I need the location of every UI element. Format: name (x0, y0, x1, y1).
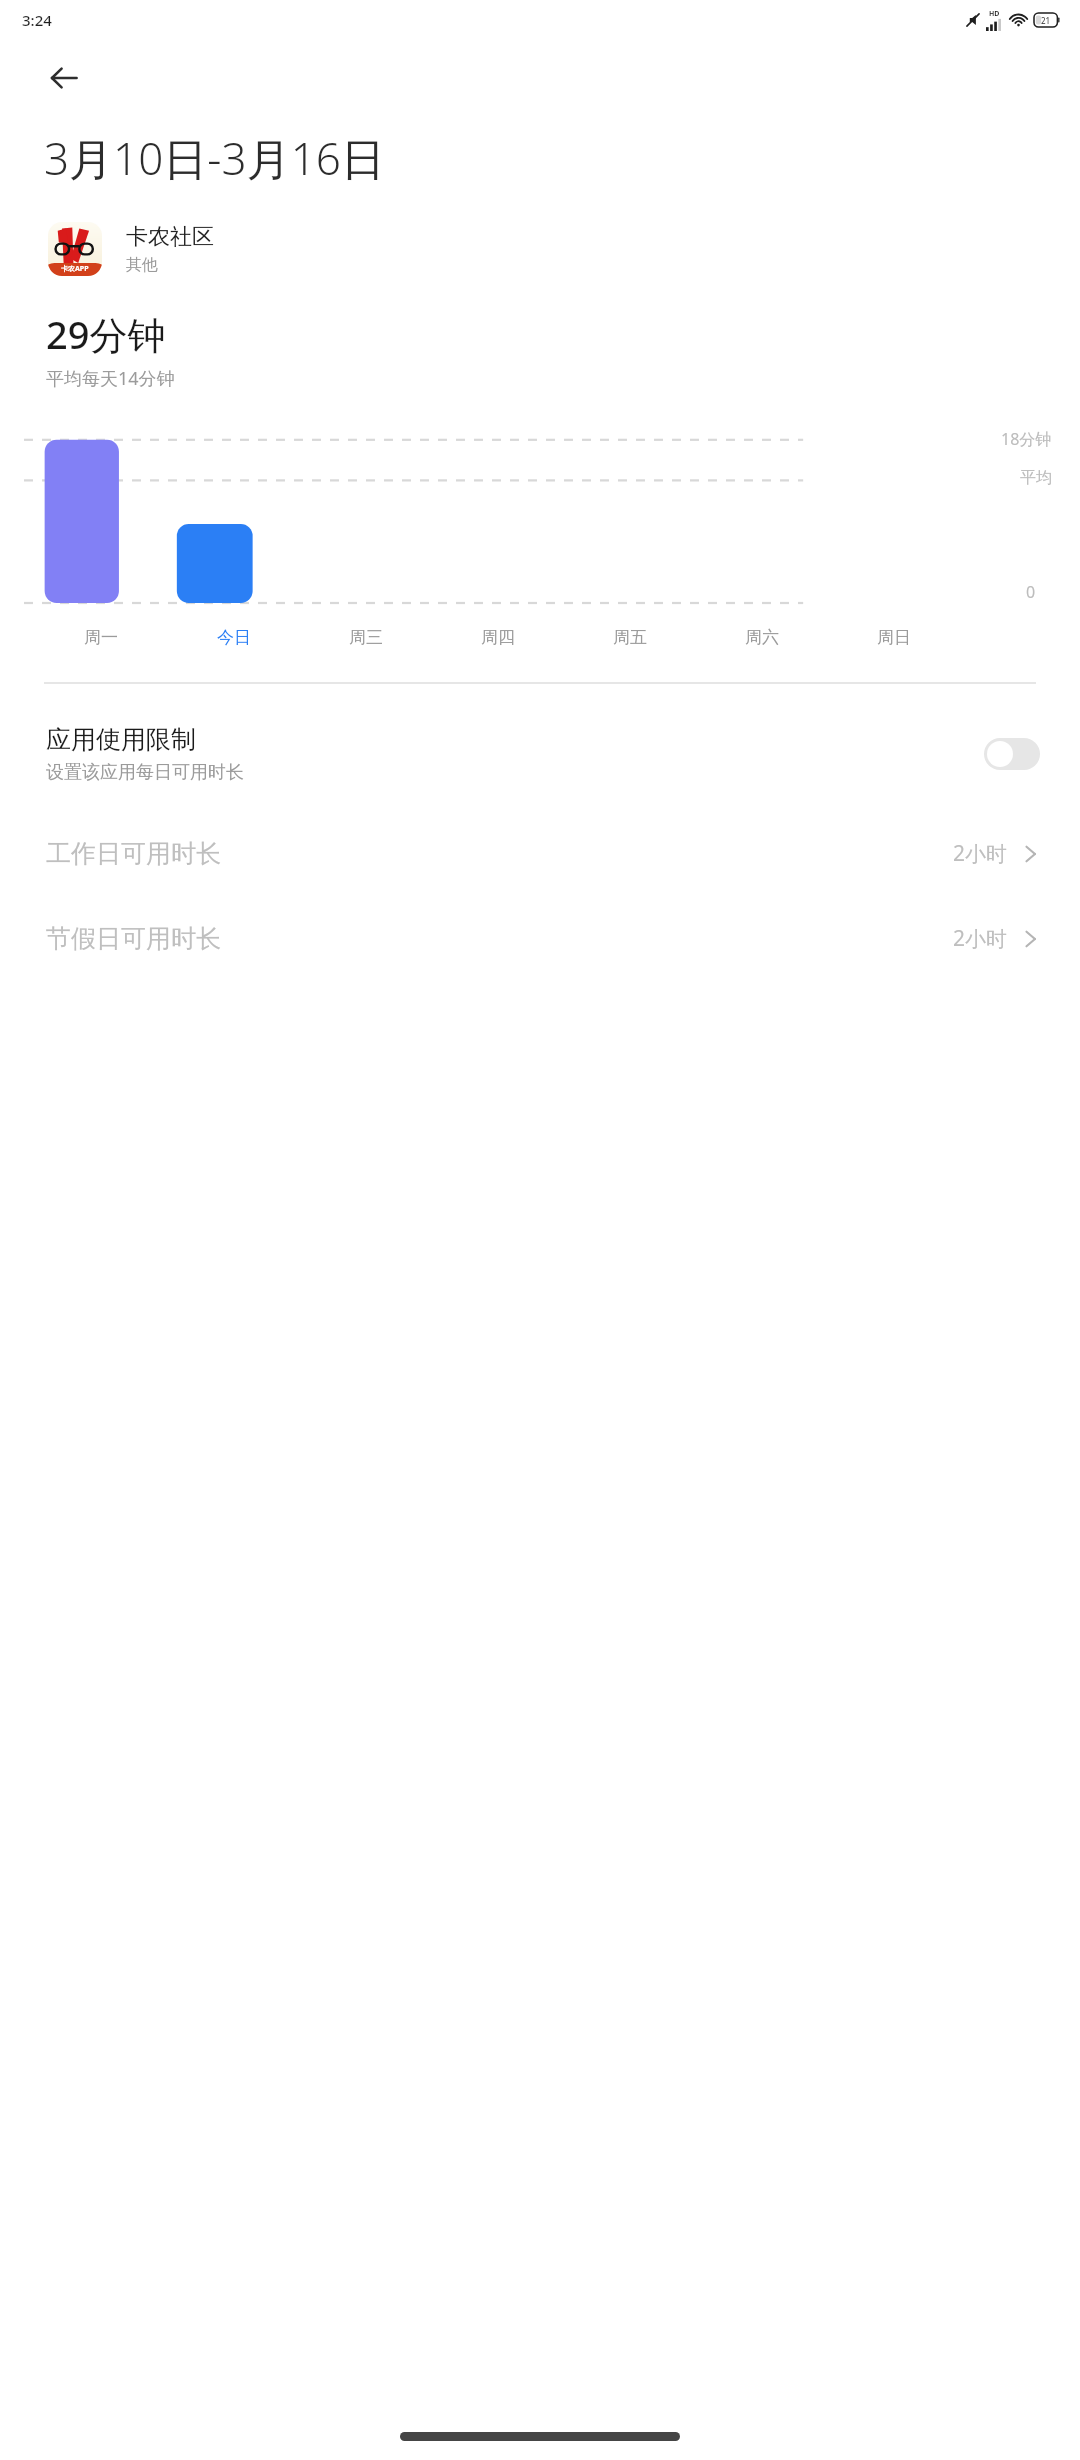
staticText: 2小时 (953, 924, 1008, 953)
staticText: 周四 (481, 627, 515, 648)
staticText: 卡农APP (61, 264, 89, 274)
staticText: 节假日可用时长 (46, 923, 953, 954)
staticText: 周一 (84, 627, 118, 648)
staticText: 周日 (877, 627, 911, 648)
button[interactable]: 周一 (34, 627, 167, 648)
staticText: 3月10日-3月16日 (44, 128, 385, 188)
staticText: 平均每天14分钟 (46, 366, 175, 391)
staticText: HD (989, 9, 1000, 19)
staticText: 今日 (217, 627, 251, 648)
staticText: 卡农社区 (126, 223, 214, 251)
staticText: 0 (1026, 581, 1036, 603)
button[interactable]: 应用使用限制开关 (984, 738, 1040, 770)
button[interactable]: 应用使用限制 (0, 714, 1080, 794)
staticText: 18分钟 (1001, 428, 1052, 450)
button[interactable]: 周三 (300, 627, 432, 648)
button[interactable]: 周日 (828, 627, 960, 648)
button[interactable]: 今日 (167, 627, 300, 648)
staticText: 2小时 (953, 839, 1008, 868)
button[interactable]: 周四 (432, 627, 564, 648)
staticText: 3:24 (22, 10, 52, 30)
button[interactable]: 周五 (564, 627, 696, 648)
button[interactable]: 工作日可用时长 (0, 820, 1080, 887)
staticText: 周三 (349, 627, 383, 648)
staticText: 工作日可用时长 (46, 838, 953, 869)
button[interactable]: Back (36, 50, 92, 106)
staticText: 周六 (745, 627, 779, 648)
staticText: 21 (1041, 15, 1051, 26)
button[interactable]: 节假日可用时长 (0, 905, 1080, 972)
staticText: 平均 (1020, 468, 1052, 488)
staticText: 应用使用限制 (46, 724, 196, 755)
staticText: 其他 (126, 255, 158, 275)
staticText: 29分钟 (46, 308, 166, 360)
staticText: 周五 (613, 627, 647, 648)
button[interactable]: 卡农APP (0, 222, 1080, 276)
button[interactable]: 周六 (696, 627, 828, 648)
staticText: 设置该应用每日可用时长 (46, 761, 244, 784)
